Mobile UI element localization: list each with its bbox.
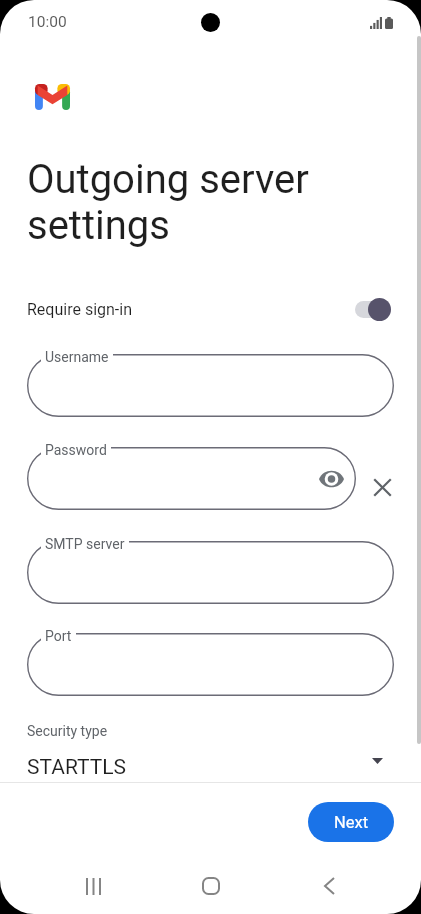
button[interactable]: SMTP server (27, 541, 394, 604)
button[interactable]: Username (27, 354, 394, 417)
staticText: STARTTLS (27, 755, 127, 780)
staticText: Username (45, 349, 109, 365)
staticText: Security type (27, 723, 108, 739)
staticText: Password (45, 442, 107, 458)
button[interactable]: Next (308, 802, 394, 842)
staticText: Next (334, 813, 369, 832)
button[interactable]: Back (305, 862, 353, 910)
staticText: 10:00 (28, 13, 67, 31)
staticText: Require sign-in (27, 300, 132, 319)
button[interactable]: Home (187, 862, 235, 910)
staticText: Port (45, 628, 72, 644)
button[interactable]: Require sign-in (355, 297, 391, 321)
button[interactable]: Clear password (360, 465, 404, 509)
staticText: SMTP server (45, 536, 125, 552)
button[interactable]: Security type (0, 723, 421, 780)
staticText: Outgoing server settings (27, 156, 309, 249)
button[interactable]: Recent apps (69, 862, 117, 910)
button[interactable]: Require sign-in (0, 296, 421, 322)
button[interactable]: Show password (311, 459, 351, 499)
button[interactable]: Port (27, 633, 394, 696)
button[interactable]: Password (27, 447, 356, 510)
